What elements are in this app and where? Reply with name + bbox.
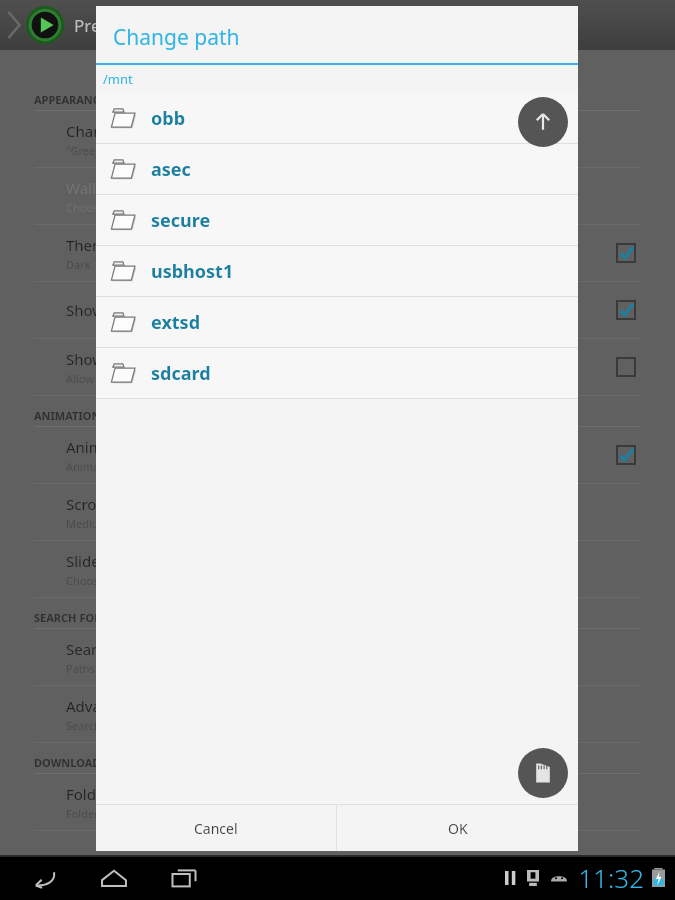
staticText: Show title bar bbox=[66, 300, 163, 320]
staticText: Theme bbox=[66, 235, 115, 255]
button[interactable]: Go up one folder bbox=[518, 97, 568, 147]
staticText: Change path bbox=[113, 23, 240, 52]
button[interactable]: Change language bbox=[0, 111, 675, 167]
staticText: extsd bbox=[151, 310, 201, 335]
staticText: Choose effect bbox=[66, 573, 137, 588]
staticText: ANIMATIONS bbox=[34, 408, 107, 423]
staticText: Animate list bbox=[66, 437, 150, 457]
staticText: Wallpaper bbox=[66, 178, 138, 198]
staticText: Animate the list items bbox=[66, 459, 179, 474]
staticText: Search paths bbox=[66, 639, 157, 659]
staticText: obb bbox=[151, 106, 186, 131]
staticText: Paths to index bbox=[66, 661, 140, 676]
button[interactable]: obb bbox=[96, 93, 578, 143]
staticText: Slide effect bbox=[66, 551, 144, 571]
staticText: Folder for downloads bbox=[66, 806, 176, 821]
button[interactable]: Cancel bbox=[96, 805, 336, 851]
staticText: sdcard bbox=[151, 361, 211, 386]
button[interactable]: Home bbox=[90, 855, 138, 900]
staticText: asec bbox=[151, 157, 191, 182]
staticText: usbhost1 bbox=[151, 259, 234, 284]
staticText: Medium bbox=[66, 516, 109, 531]
staticText: 11:32 bbox=[578, 860, 644, 895]
staticText: Prefer bbox=[74, 14, 124, 37]
staticText: OK bbox=[448, 819, 468, 838]
staticText: DOWNLOADS bbox=[34, 755, 107, 770]
button[interactable]: secure bbox=[96, 195, 578, 245]
staticText: "Greek" bbox=[66, 143, 106, 158]
button[interactable]: asec bbox=[96, 144, 578, 194]
button[interactable]: Show title bar bbox=[0, 282, 675, 338]
button[interactable]: Slide effect bbox=[0, 541, 675, 597]
button[interactable]: Recent apps bbox=[160, 855, 208, 900]
button[interactable]: Search paths bbox=[0, 629, 675, 685]
staticText: APPEARANCE bbox=[34, 92, 107, 107]
staticText: Advanced search bbox=[66, 696, 186, 716]
staticText: Show shadows bbox=[66, 349, 170, 369]
button[interactable]: Animate list bbox=[0, 427, 675, 483]
staticText: Search subfolders bbox=[66, 718, 159, 733]
button[interactable]: Back bbox=[20, 855, 68, 900]
button[interactable]: Folder bbox=[0, 774, 675, 830]
button[interactable]: sdcard bbox=[96, 348, 578, 398]
button[interactable]: Storage bbox=[518, 748, 568, 798]
button[interactable]: extsd bbox=[96, 297, 578, 347]
staticText: Change language bbox=[66, 121, 191, 141]
staticText: SEARCH FOLDERS bbox=[34, 610, 128, 625]
button[interactable]: Scroll speed bbox=[0, 484, 675, 540]
button[interactable]: Advanced search bbox=[0, 686, 675, 742]
staticText: Dark bbox=[66, 257, 91, 272]
button[interactable]: Wallpaper bbox=[0, 168, 675, 224]
staticText: /mnt bbox=[103, 70, 133, 88]
staticText: Choose a wallpaper bbox=[66, 200, 168, 215]
button[interactable]: usbhost1 bbox=[96, 246, 578, 296]
button[interactable]: OK bbox=[337, 805, 578, 851]
button[interactable]: Theme bbox=[0, 225, 675, 281]
staticText: Scroll speed bbox=[66, 494, 151, 514]
staticText: Folder bbox=[66, 784, 111, 804]
staticText: Allow drop shadows bbox=[66, 371, 170, 386]
button[interactable]: Show shadows bbox=[0, 339, 675, 395]
staticText: secure bbox=[151, 208, 211, 233]
staticText: Cancel bbox=[194, 819, 238, 838]
